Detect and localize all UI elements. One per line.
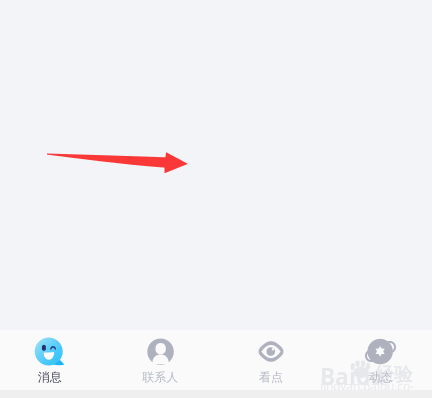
button[interactable]: 联系人 bbox=[106, 330, 214, 398]
staticText: 联系人 bbox=[142, 370, 178, 385]
staticText: 动态 bbox=[368, 370, 392, 385]
staticText: 消息 bbox=[38, 370, 62, 385]
button[interactable]: 动态 bbox=[326, 330, 432, 398]
button[interactable]: 消息 bbox=[0, 330, 104, 398]
staticText: jingyan.baidu.com bbox=[320, 378, 414, 398]
staticText: Baidu bbox=[320, 361, 385, 391]
button[interactable]: 看点 bbox=[217, 330, 325, 398]
staticText: 看点 bbox=[259, 370, 283, 385]
staticText: 经验 bbox=[375, 363, 413, 386]
